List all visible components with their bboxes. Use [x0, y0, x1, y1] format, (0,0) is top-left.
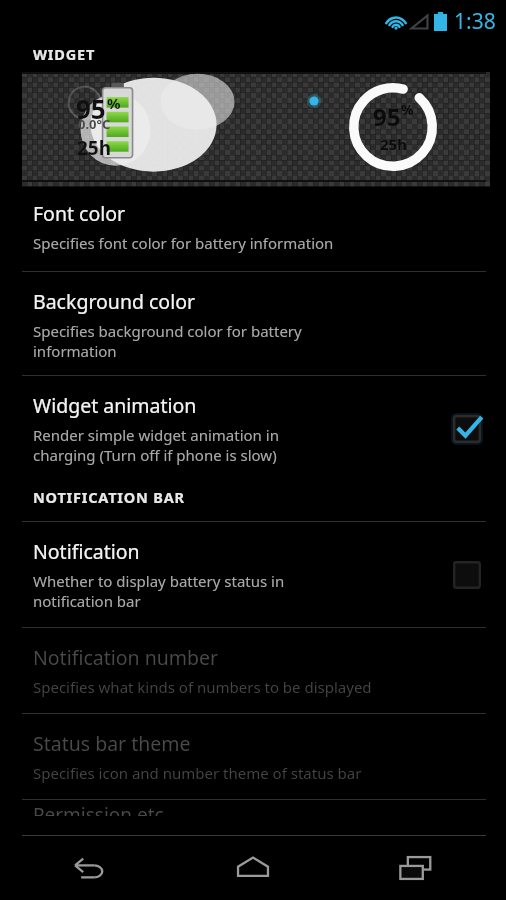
staticText: Notification number [33, 644, 219, 671]
staticText: 25h [380, 134, 407, 154]
button[interactable]: Widget animation [0, 376, 506, 481]
staticText: % [401, 100, 414, 119]
staticText: Specifies what kinds of numbers to be di… [33, 677, 372, 697]
staticText: 1:38 [454, 7, 496, 36]
button[interactable]: 95 [22, 72, 486, 182]
button[interactable]: Font color [0, 182, 506, 271]
staticText: Specifies icon and number theme of statu… [33, 763, 362, 783]
staticText: 95 [373, 100, 401, 133]
staticText: 0.0°C [78, 115, 111, 133]
staticText: Specifies background color for battery i… [33, 321, 302, 361]
staticText: Specifies font color for battery informa… [33, 233, 334, 253]
staticText: NOTIFICATION BAR [33, 487, 185, 507]
staticText: WIDGET [33, 44, 96, 64]
staticText: Render simple widget animation in chargi… [33, 425, 279, 465]
staticText: Status bar theme [33, 730, 191, 757]
staticText: 95 [76, 91, 106, 126]
staticText: 25h [77, 135, 112, 161]
other: Unchecked [450, 558, 484, 592]
button[interactable]: Home [221, 836, 285, 900]
staticText: Font color [33, 200, 126, 227]
staticText: % [107, 93, 121, 113]
button[interactable]: Recent apps [384, 836, 448, 900]
button[interactable]: Notification [0, 522, 506, 627]
button[interactable]: Status bar theme [0, 714, 506, 799]
button[interactable]: Notification number [0, 628, 506, 713]
staticText: Notification [33, 538, 140, 565]
button[interactable]: Permission etc [0, 800, 506, 814]
staticText: Permission etc [33, 802, 164, 816]
button[interactable]: Back [58, 836, 122, 900]
staticText: Whether to display battery status in not… [33, 571, 285, 611]
staticText: Widget animation [33, 392, 197, 419]
staticText: Background color [33, 288, 196, 315]
button[interactable]: Background color [0, 272, 506, 375]
other: Checked [450, 412, 484, 446]
